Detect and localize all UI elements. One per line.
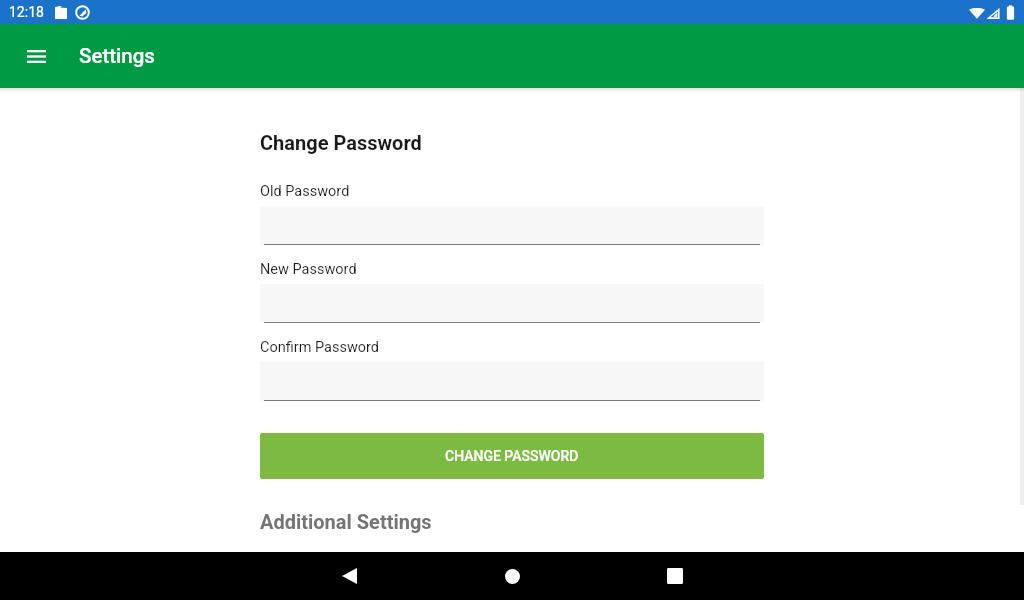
button[interactable]	[260, 284, 764, 323]
staticText: CHANGE PASSWORD	[445, 448, 579, 464]
staticText: Additional Settings	[260, 510, 432, 533]
button[interactable]: Back	[325, 552, 373, 600]
button[interactable]: CHANGE PASSWORD	[260, 433, 764, 479]
staticText: New Password	[260, 261, 357, 278]
staticText: 12:18	[9, 4, 44, 20]
button[interactable]	[260, 206, 764, 245]
staticText: Settings	[79, 44, 155, 68]
button[interactable]: Home	[488, 552, 536, 600]
staticText: Change Password	[260, 131, 422, 154]
button[interactable]: Recent apps	[651, 552, 699, 600]
staticText: Old Password	[260, 183, 350, 200]
button[interactable]: Open navigation menu	[16, 36, 56, 76]
button[interactable]	[260, 362, 764, 401]
staticText: Confirm Password	[260, 339, 380, 356]
